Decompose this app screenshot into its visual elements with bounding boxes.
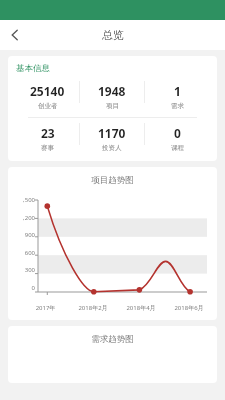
staticText: 2017年: [22, 304, 69, 312]
staticText: 2018年4月: [117, 304, 165, 312]
staticText: 0: [8, 284, 35, 292]
button[interactable]: Back: [0, 20, 30, 50]
staticText: 900: [8, 231, 35, 239]
button[interactable]: 0: [145, 123, 209, 154]
staticText: 总览: [102, 28, 124, 42]
staticText: 赛事: [41, 144, 54, 152]
button[interactable]: 1170: [80, 123, 144, 154]
staticText: 1948: [98, 83, 126, 99]
staticText: 基本信息: [16, 63, 50, 74]
staticText: ,500: [8, 196, 35, 204]
staticText: 投资人: [102, 144, 122, 152]
staticText: 需求趋势图: [8, 334, 217, 345]
button[interactable]: 1948: [80, 81, 144, 112]
staticText: 2018年2月: [69, 304, 117, 312]
button[interactable]: 1: [145, 81, 209, 112]
staticText: 25140: [30, 83, 65, 99]
staticText: 项目: [106, 102, 119, 110]
staticText: 23: [41, 125, 55, 141]
staticText: 0: [174, 125, 181, 141]
staticText: 2018年6月: [165, 304, 213, 312]
staticText: 需求: [171, 102, 184, 110]
staticText: ,200: [8, 214, 35, 222]
button[interactable]: 25140: [16, 81, 79, 112]
staticText: 课程: [171, 144, 184, 152]
staticText: 300: [8, 266, 35, 274]
staticText: 600: [8, 249, 35, 257]
staticText: 项目趋势图: [8, 175, 217, 186]
staticText: 创业者: [38, 102, 58, 110]
staticText: 1: [174, 83, 181, 99]
staticText: 1170: [98, 125, 126, 141]
button[interactable]: 23: [16, 123, 79, 154]
